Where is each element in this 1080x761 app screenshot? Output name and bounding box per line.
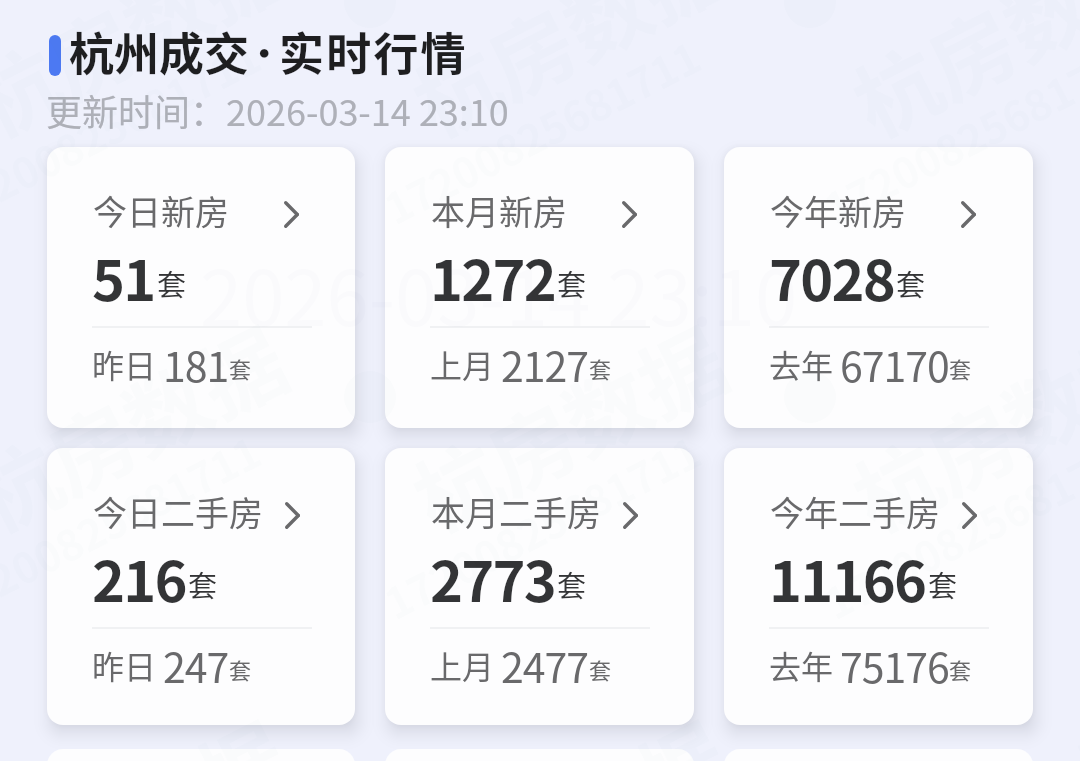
staticText: 1272 bbox=[430, 236, 555, 317]
staticText: 11166 bbox=[769, 537, 926, 618]
staticText: 2773 bbox=[430, 537, 555, 618]
button[interactable]: 今年新房 bbox=[724, 147, 1033, 428]
staticText: 247 bbox=[163, 635, 229, 694]
staticText: 套 bbox=[589, 653, 612, 685]
button[interactable]: 今日新房 bbox=[47, 147, 355, 428]
other: 查看详情 bbox=[285, 502, 300, 529]
button[interactable]: 今日二手房 bbox=[47, 448, 355, 725]
staticText: 17200825681711 bbox=[373, 420, 710, 631]
other: 查看详情 bbox=[622, 201, 637, 228]
staticText: 套 bbox=[229, 352, 252, 384]
staticText: 杭房数据 bbox=[391, 0, 746, 162]
staticText: 杭房数据 bbox=[0, 0, 306, 162]
staticText: 上月 bbox=[430, 341, 495, 387]
other: 查看详情 bbox=[284, 201, 299, 228]
staticText: 今日新房 bbox=[93, 186, 229, 235]
staticText: 17200825681711 bbox=[813, 420, 1080, 631]
staticText: 套 bbox=[589, 352, 612, 384]
staticText: 75176 bbox=[840, 635, 949, 694]
button[interactable]: 本月二手房 bbox=[385, 448, 694, 725]
staticText: 杭房数据 bbox=[391, 295, 746, 557]
staticText: 套 bbox=[557, 262, 587, 304]
staticText: 216 bbox=[92, 537, 186, 618]
staticText: 7028 bbox=[769, 236, 894, 317]
staticText: 杭州成交 bbox=[69, 19, 250, 84]
staticText: 实时行情 bbox=[279, 19, 468, 84]
staticText: 套 bbox=[557, 563, 587, 605]
staticText: 杭房数据 bbox=[0, 295, 306, 557]
staticText: 杭房数据 bbox=[831, 295, 1080, 557]
staticText: 今年新房 bbox=[770, 186, 906, 235]
staticText: 去年 bbox=[769, 341, 834, 387]
staticText: 2477 bbox=[501, 635, 589, 694]
staticText: 杭房数据 bbox=[831, 0, 1080, 162]
staticText: ･ bbox=[253, 19, 276, 84]
staticText: 本月新房 bbox=[431, 186, 567, 235]
staticText: 昨日 bbox=[92, 642, 157, 688]
other: 查看详情 bbox=[623, 502, 638, 529]
staticText: 套 bbox=[896, 262, 926, 304]
staticText: 去年 bbox=[769, 642, 834, 688]
other: 查看详情 bbox=[961, 201, 976, 228]
staticText: 今日二手房 bbox=[93, 487, 263, 536]
staticText: 2127 bbox=[501, 334, 589, 393]
other: 查看详情 bbox=[962, 502, 977, 529]
staticText: 17200825681711 bbox=[373, 25, 710, 236]
staticText: 17200825681711 bbox=[813, 25, 1080, 236]
button[interactable]: 今年二手房 bbox=[724, 448, 1033, 725]
staticText: 套 bbox=[188, 563, 218, 605]
staticText: 杭房数据 bbox=[0, 690, 306, 761]
staticText: 17200825681711 bbox=[0, 25, 270, 236]
staticText: 套 bbox=[157, 262, 187, 304]
staticText: 上月 bbox=[430, 642, 495, 688]
button[interactable]: 本月新房 bbox=[385, 147, 694, 428]
staticText: 杭房数据 bbox=[391, 690, 746, 761]
staticText: 今年二手房 bbox=[770, 487, 940, 536]
staticText: 套 bbox=[229, 653, 252, 685]
staticText: 昨日 bbox=[92, 341, 157, 387]
staticText: 2026-03-14 23:10 bbox=[200, 238, 798, 348]
staticText: 本月二手房 bbox=[431, 487, 601, 536]
staticText: 套 bbox=[949, 352, 972, 384]
staticText: 套 bbox=[928, 563, 958, 605]
staticText: 181 bbox=[163, 334, 229, 393]
staticText: 17200825681711 bbox=[0, 420, 270, 631]
staticText: 更新时间：2026-03-14 23:10 bbox=[46, 84, 509, 136]
staticText: 杭房数据 bbox=[831, 690, 1080, 761]
staticText: 51 bbox=[92, 236, 155, 317]
staticText: 67170 bbox=[840, 334, 949, 393]
staticText: 套 bbox=[949, 653, 972, 685]
